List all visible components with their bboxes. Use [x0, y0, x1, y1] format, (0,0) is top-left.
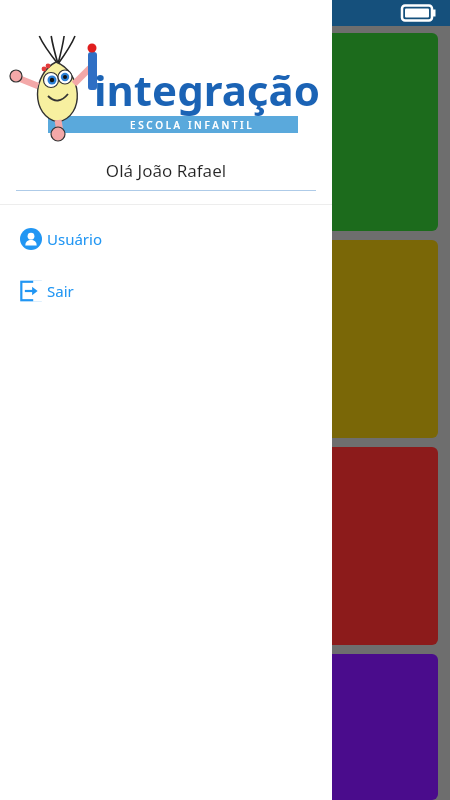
staticText: Usuário	[47, 229, 102, 249]
button[interactable]: Sair	[0, 275, 332, 307]
button[interactable]: Horário de Aulas	[12, 240, 438, 438]
staticText: Sair	[47, 281, 74, 301]
button[interactable]: Cardápio Semanal	[12, 447, 438, 645]
staticText: E S C O L A I N F A N T I L	[130, 118, 252, 132]
staticText: integração	[94, 61, 320, 118]
button[interactable]: Galeria	[12, 654, 438, 800]
button[interactable]: Usuário	[0, 223, 332, 255]
staticText: Agenda	[191, 187, 260, 213]
staticText: Olá João Rafael	[0, 159, 332, 182]
button[interactable]: Agenda	[12, 33, 438, 231]
